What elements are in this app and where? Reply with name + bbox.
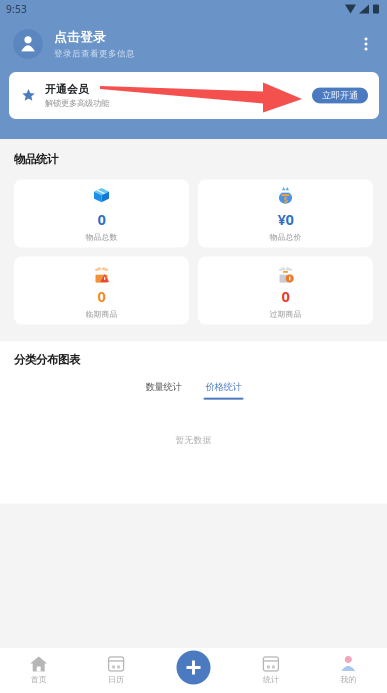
staticText: 0 bbox=[97, 209, 105, 229]
staticText: 点击登录 bbox=[54, 29, 106, 45]
staticText: 9:53 bbox=[6, 2, 27, 16]
button[interactable]: 0 bbox=[14, 179, 189, 247]
staticText: 统计 bbox=[263, 674, 279, 685]
button[interactable]: 0 bbox=[198, 256, 373, 324]
button[interactable]: 价格统计 bbox=[203, 381, 243, 400]
staticText: 我的 bbox=[340, 674, 356, 685]
button[interactable]: $ bbox=[198, 179, 373, 247]
staticText: 数量统计 bbox=[145, 381, 181, 393]
staticText: 开通会员 bbox=[45, 83, 89, 96]
button[interactable]: 日历 bbox=[77, 648, 155, 693]
button[interactable]: 点击登录 bbox=[13, 29, 135, 59]
staticText: 0 bbox=[281, 286, 289, 306]
staticText: 日历 bbox=[108, 674, 124, 685]
staticText: 价格统计 bbox=[205, 381, 241, 393]
staticText: ¥0 bbox=[277, 209, 293, 229]
staticText: 暂无数据 bbox=[175, 435, 211, 445]
staticText: 分类分布图表 bbox=[14, 352, 80, 367]
staticText: 物品总数 bbox=[85, 232, 117, 242]
staticText: 临期商品 bbox=[85, 309, 117, 319]
staticText: 首页 bbox=[31, 674, 47, 685]
staticText: 解锁更多高级功能 bbox=[45, 98, 109, 108]
button[interactable]: 0 bbox=[14, 256, 189, 324]
button[interactable]: 统计 bbox=[232, 648, 310, 693]
staticText: 物品总价 bbox=[269, 232, 301, 242]
button[interactable]: 更多 bbox=[353, 29, 379, 59]
staticText: 立即开通 bbox=[322, 90, 358, 101]
staticText: 0 bbox=[97, 286, 105, 306]
button[interactable]: 开通会员 bbox=[9, 72, 379, 119]
button[interactable]: 数量统计 bbox=[143, 381, 183, 400]
staticText: $ bbox=[283, 195, 288, 206]
button[interactable]: 首页 bbox=[0, 648, 77, 693]
button[interactable]: 添加 bbox=[176, 650, 210, 684]
staticText: 登录后查看更多信息 bbox=[54, 48, 135, 59]
staticText: 过期商品 bbox=[269, 309, 301, 319]
staticText: 物品统计 bbox=[14, 152, 58, 166]
button[interactable]: 我的 bbox=[310, 648, 387, 693]
